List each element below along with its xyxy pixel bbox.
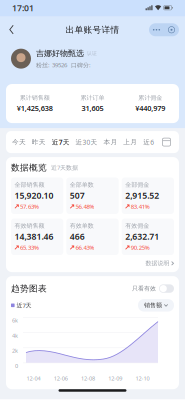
staticText: 57.63% — [20, 202, 39, 211]
staticText: 12-08 — [81, 375, 95, 382]
button[interactable]: 数据说明 — [145, 260, 174, 267]
staticText: 2,632.71 — [125, 231, 159, 242]
staticText: 昨天 — [32, 138, 46, 146]
staticText: 趋势图表 — [11, 283, 47, 294]
button[interactable]: 近7天 — [52, 132, 70, 153]
button[interactable]: More options — [149, 23, 179, 36]
staticText: 14,381.46 — [14, 231, 53, 242]
staticText: 66.43% — [75, 243, 94, 252]
staticText: 全部销售额 — [14, 181, 44, 189]
button[interactable]: 本月 — [103, 132, 117, 153]
staticText: 近7天 — [15, 301, 32, 309]
button[interactable]: 上月 — [123, 132, 137, 153]
staticText: 销售额 — [144, 301, 162, 309]
button[interactable]: 今天 — [12, 132, 26, 153]
staticText: 0 — [15, 362, 18, 370]
staticText: 认证 — [87, 50, 97, 56]
button[interactable]: Pick date range — [160, 135, 173, 149]
button[interactable]: 昨天 — [32, 132, 46, 153]
button[interactable]: 近6 — [143, 132, 154, 153]
staticText: 近7天 — [52, 137, 70, 147]
button[interactable]: Back — [6, 23, 18, 37]
staticText: 2,915.52 — [125, 189, 159, 201]
staticText: 口碑分: — [71, 61, 91, 69]
staticText: ¥440,979 — [135, 103, 165, 113]
staticText: 6k — [12, 317, 18, 324]
staticText: 近30天 — [76, 137, 98, 147]
staticText: 本月 — [103, 138, 117, 146]
staticText: 12-04 — [27, 375, 41, 382]
staticText: 累计订单 — [80, 94, 104, 102]
staticText: 83.41% — [131, 202, 150, 211]
staticText: 90.25% — [131, 243, 150, 252]
staticText: 12-06 — [54, 375, 68, 382]
staticText: 有效单数 — [70, 222, 94, 230]
staticText: ¥1,425,638 — [17, 103, 53, 113]
staticText: 有效销售额 — [14, 222, 44, 230]
staticText: 吉娜好物甄选 — [36, 48, 84, 58]
staticText: 累计销售额 — [20, 94, 50, 102]
staticText: 累计佣金 — [138, 94, 162, 102]
staticText: 31,605 — [81, 103, 103, 113]
button[interactable]: 近30天 — [76, 132, 98, 153]
staticText: 数据概览 — [11, 162, 47, 173]
staticText: 有效佣金 — [125, 222, 149, 230]
staticText: 近6 — [143, 137, 154, 147]
staticText: 12-09 — [108, 375, 122, 382]
staticText: 56.48% — [75, 202, 94, 211]
staticText: 近7天数据 — [51, 163, 78, 172]
button[interactable]: 销售额 — [138, 299, 174, 312]
staticText: 数据说明 — [145, 260, 169, 267]
staticText: 全部单数 — [70, 181, 94, 189]
staticText: 上月 — [123, 138, 137, 146]
staticText: 15,920.10 — [14, 189, 53, 201]
staticText: 65.33% — [20, 243, 39, 252]
staticText: 4k — [12, 332, 18, 339]
staticText: 507 — [70, 189, 85, 201]
staticText: 466 — [70, 231, 85, 242]
staticText: 12-10 — [135, 375, 149, 382]
staticText: 今天 — [12, 138, 26, 146]
staticText: 全部佣金 — [125, 181, 149, 189]
staticText: 只看有效 — [132, 285, 156, 292]
staticText: 出单账号详情 — [65, 24, 119, 35]
staticText: 2k — [12, 347, 18, 354]
staticText: 17:01 — [12, 2, 34, 14]
staticText: 粉丝: 39526 — [36, 61, 67, 69]
button[interactable]: Only valid orders — [159, 284, 174, 293]
